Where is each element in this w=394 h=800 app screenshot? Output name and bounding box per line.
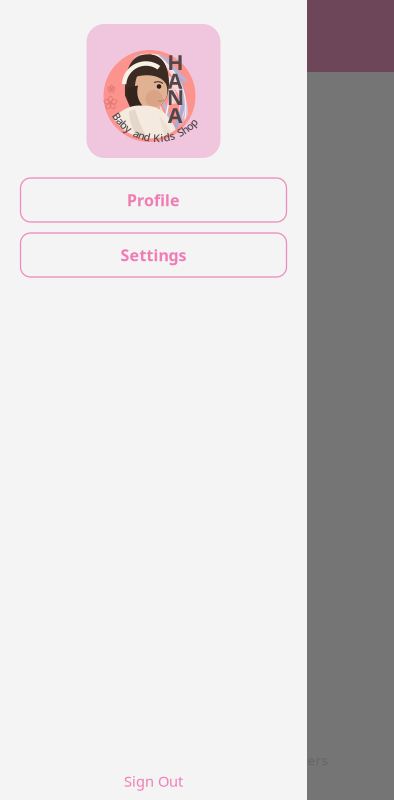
staticText: S bbox=[177, 125, 183, 139]
staticText: n bbox=[138, 128, 145, 143]
staticText: Orders bbox=[284, 751, 327, 769]
staticText: i bbox=[160, 131, 163, 145]
staticText: y bbox=[126, 122, 132, 136]
staticText: s bbox=[169, 129, 174, 143]
staticText: Sign Out bbox=[124, 771, 183, 791]
staticText: N bbox=[167, 83, 184, 111]
staticText: H bbox=[167, 48, 183, 76]
staticText: Settings bbox=[120, 244, 186, 266]
staticText: a bbox=[117, 114, 123, 128]
staticText: b bbox=[121, 118, 128, 132]
staticText: p bbox=[190, 115, 197, 129]
staticText: d bbox=[163, 130, 170, 144]
staticText: d bbox=[144, 130, 151, 144]
staticText: h bbox=[182, 122, 189, 136]
button[interactable]: Sign Out bbox=[20, 767, 286, 795]
staticText: Profile bbox=[127, 189, 180, 211]
staticText: A bbox=[168, 66, 183, 94]
button[interactable]: Profile bbox=[20, 178, 286, 222]
button[interactable]: Settings bbox=[20, 233, 286, 277]
staticText: A bbox=[168, 101, 183, 129]
staticText: K bbox=[153, 131, 160, 145]
staticText: o bbox=[186, 119, 193, 133]
staticText: a bbox=[134, 126, 140, 140]
staticText: B bbox=[113, 109, 120, 123]
